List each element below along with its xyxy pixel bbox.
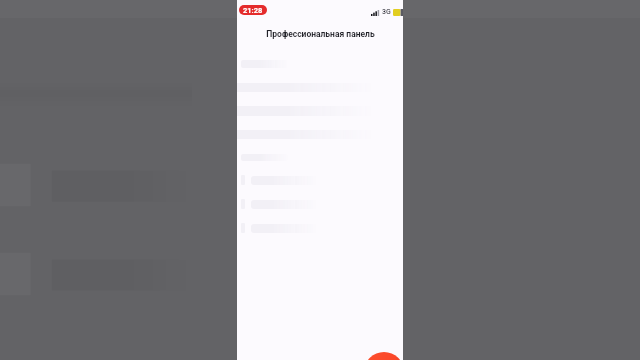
button[interactable]: Add: [364, 352, 404, 360]
button[interactable]: [237, 175, 403, 185]
staticText: 3G: [382, 8, 391, 16]
staticText: Профессиональная панель: [266, 29, 375, 39]
staticText: 21:28: [243, 6, 263, 15]
button[interactable]: [237, 199, 403, 209]
button[interactable]: [237, 223, 403, 233]
